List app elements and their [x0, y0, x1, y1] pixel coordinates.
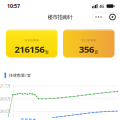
- staticText: 楼市指南针: [47, 14, 72, 21]
- staticText: 10:57: [7, 2, 20, 10]
- button[interactable]: Home: [106, 13, 118, 21]
- staticText: 套: [94, 50, 98, 54]
- button[interactable]: 当前挂牌量: [6, 29, 57, 58]
- staticText: 4G: [99, 3, 104, 9]
- staticText: 昨日新增量: [81, 39, 96, 42]
- staticText: 21.7万: [0, 83, 11, 89]
- staticText: 套: [45, 50, 49, 54]
- staticText: 20.0万: [0, 109, 11, 114]
- button[interactable]: 昨日新增量: [63, 29, 114, 58]
- button[interactable]: More: [93, 13, 105, 21]
- staticText: 挂牌数量/套: [9, 73, 31, 78]
- staticText: 当前挂牌量: [24, 39, 39, 42]
- staticText: 356: [79, 43, 94, 55]
- staticText: 216156: [14, 43, 44, 55]
- staticText: 20.6万: [0, 96, 11, 101]
